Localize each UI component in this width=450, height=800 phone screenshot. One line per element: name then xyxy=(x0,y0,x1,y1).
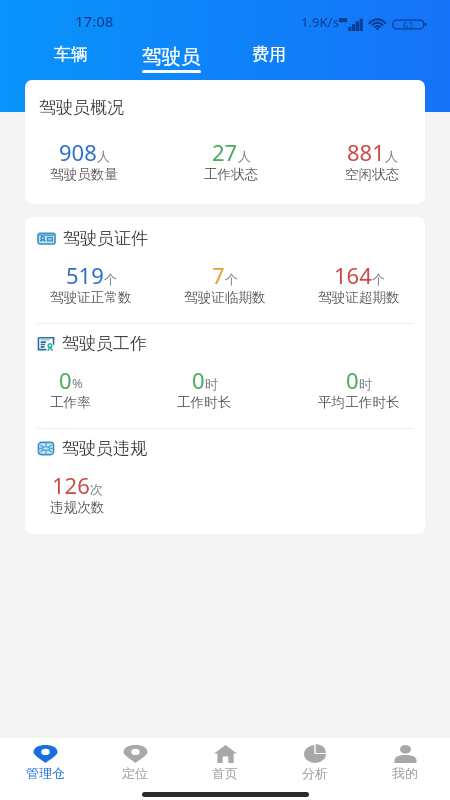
staticText: 个 xyxy=(372,271,385,287)
staticText: 驾驶证正常数 xyxy=(50,289,132,306)
staticText: 519 xyxy=(66,260,104,290)
button[interactable]: 我的 xyxy=(360,738,450,788)
staticText: 人 xyxy=(97,148,110,164)
staticText: 0 xyxy=(192,365,205,395)
staticText: 平均工作时长 xyxy=(318,394,400,411)
staticText: 驾驶员工作 xyxy=(62,333,147,354)
staticText: 0 xyxy=(59,365,72,395)
staticText: 驾驶证超期数 xyxy=(318,289,400,306)
staticText: 分析 xyxy=(302,765,328,781)
staticText: 工作状态 xyxy=(204,166,259,183)
staticText: 126 xyxy=(52,470,90,500)
staticText: 7 xyxy=(212,260,225,290)
staticText: 62 xyxy=(403,19,414,31)
staticText: 工作时长 xyxy=(177,394,232,411)
staticText: % xyxy=(72,374,83,392)
staticText: 首页 xyxy=(212,765,238,781)
staticText: 驾驶证临期数 xyxy=(184,289,266,306)
staticText: 驾驶员数量 xyxy=(50,166,118,183)
staticText: 时 xyxy=(205,376,218,392)
staticText: 个 xyxy=(104,271,117,287)
staticText: 费用 xyxy=(252,44,286,65)
staticText: 881 xyxy=(347,137,385,167)
staticText: 空闲状态 xyxy=(345,166,400,183)
staticText: 驾驶员证件 xyxy=(63,228,148,249)
staticText: 车辆 xyxy=(54,44,88,65)
staticText: 次 xyxy=(90,481,103,497)
staticText: 驾驶员违规 xyxy=(62,438,147,459)
staticText: 0 xyxy=(346,365,359,395)
staticText: 1.9K/s xyxy=(301,13,339,31)
staticText: 164 xyxy=(334,260,372,290)
button[interactable]: 首页 xyxy=(180,738,270,788)
staticText: 908 xyxy=(59,137,97,167)
staticText: 违规次数 xyxy=(50,499,105,516)
staticText: 27 xyxy=(212,137,238,167)
staticText: 人 xyxy=(385,148,398,164)
staticText: 我的 xyxy=(392,765,418,781)
staticText: 个 xyxy=(225,271,238,287)
button[interactable]: 定位 xyxy=(90,738,180,788)
button[interactable]: 费用 xyxy=(252,44,286,65)
button[interactable]: 驾驶员 xyxy=(142,44,201,73)
staticText: 定位 xyxy=(122,765,148,781)
staticText: 17:08 xyxy=(75,11,114,31)
button[interactable]: 分析 xyxy=(270,738,360,788)
staticText: 驾驶员 xyxy=(142,44,201,69)
staticText: 管理仓 xyxy=(26,765,65,781)
staticText: 驾驶员概况 xyxy=(39,97,124,118)
button[interactable]: 管理仓 xyxy=(0,738,90,788)
button[interactable]: 车辆 xyxy=(54,44,88,65)
staticText: 工作率 xyxy=(50,394,91,411)
staticText: 时 xyxy=(359,376,372,392)
staticText: 人 xyxy=(238,148,251,164)
